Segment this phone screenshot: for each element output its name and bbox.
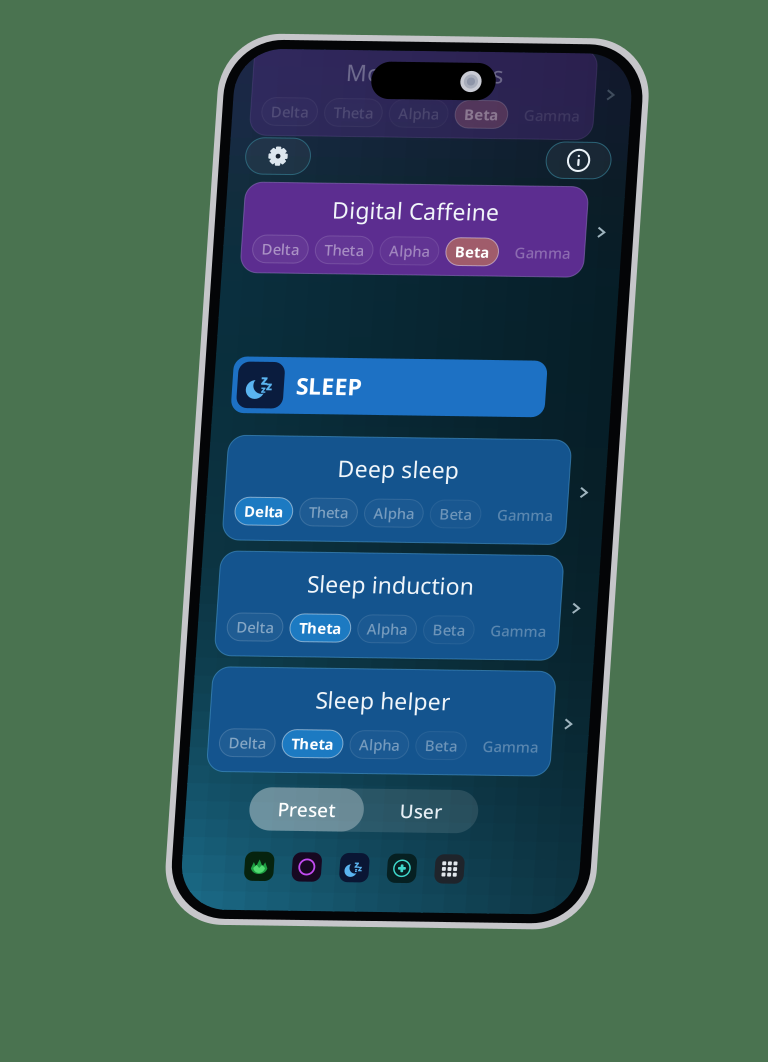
button[interactable]: Preset [79, 745, 192, 788]
button[interactable]: Info [329, 103, 393, 139]
staticText: Gamma [305, 577, 360, 597]
button[interactable]: Sleep helper [34, 627, 373, 730]
staticText: Beta [245, 67, 279, 87]
button[interactable]: Morning focus [34, 11, 373, 101]
staticText: User [227, 754, 269, 779]
staticText: Alpha [182, 463, 222, 482]
button[interactable]: More [257, 809, 304, 838]
button[interactable]: Open Deep sleep [373, 429, 403, 469]
button[interactable]: Open Digital Caffeine [373, 172, 403, 212]
button[interactable]: Open Sleep helper [373, 658, 403, 698]
button[interactable]: Deep sleep [34, 398, 373, 501]
staticText: Alpha [180, 67, 220, 87]
button[interactable]: Alpha [171, 199, 229, 227]
staticText: Gamma [304, 463, 359, 482]
button[interactable]: Alpha [174, 573, 232, 601]
staticText: Morning focus [125, 22, 281, 52]
button[interactable]: Gamma [296, 688, 369, 715]
button[interactable]: Open Morning focus [373, 36, 403, 76]
button[interactable]: Gamma [295, 459, 368, 486]
staticText: Sleep induction [121, 528, 286, 558]
button[interactable]: z [34, 320, 344, 376]
button[interactable]: User [192, 745, 305, 788]
button[interactable]: Alpha [171, 63, 229, 91]
staticText: Gamma [304, 67, 359, 87]
button[interactable]: Beta [236, 63, 288, 91]
staticText: Alpha [180, 203, 220, 223]
button[interactable]: Sleep induction [34, 512, 373, 616]
button[interactable]: Alpha [174, 688, 232, 715]
staticText: Sleep helper [137, 643, 270, 673]
button[interactable]: Beta [236, 199, 288, 227]
staticText: Alpha [183, 692, 223, 711]
staticText: Gamma [304, 203, 359, 223]
staticText: Digital Caffeine [121, 158, 286, 188]
button[interactable]: Digital Caffeine [34, 147, 373, 237]
button[interactable]: Health [210, 809, 257, 838]
button[interactable]: Gamma [295, 63, 368, 91]
staticText: Gamma [305, 692, 360, 711]
button[interactable]: Sleep [163, 809, 210, 838]
staticText: Deep sleep [143, 414, 263, 444]
staticText: Alpha [183, 577, 223, 597]
button[interactable]: Gamma [295, 199, 368, 227]
button[interactable]: Open Sleep induction [373, 544, 403, 584]
button[interactable]: Alpha [173, 459, 231, 486]
button[interactable]: Gamma [296, 573, 369, 601]
